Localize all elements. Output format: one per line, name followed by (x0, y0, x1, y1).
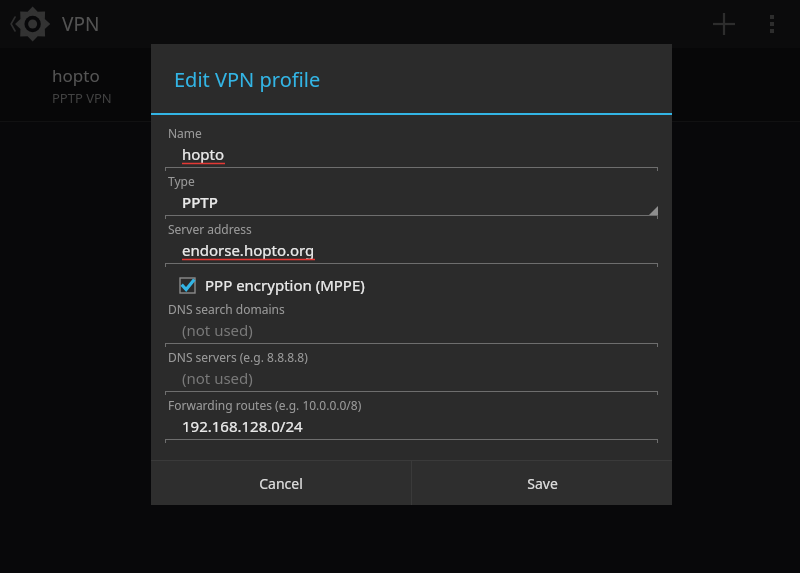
staticText: VPN (62, 11, 100, 37)
button[interactable]: Cancel (151, 461, 411, 505)
staticText: Forwarding routes (e.g. 10.0.0.0/8) (168, 397, 362, 413)
staticText: Cancel (259, 474, 303, 493)
staticText: 192.168.128.0/24 (182, 416, 303, 436)
button[interactable]: More options (748, 0, 796, 48)
button[interactable]: Back (8, 2, 52, 46)
button[interactable]: endorse.hopto.org (165, 238, 658, 269)
staticText: endorse.hopto.org (182, 240, 315, 260)
staticText: Name (168, 125, 202, 141)
button[interactable]: PPP encryption (MPPE) (179, 275, 658, 295)
button[interactable]: hopto (165, 142, 658, 173)
button[interactable]: Save (412, 461, 672, 505)
staticText: PPTP (182, 192, 218, 212)
button[interactable]: hopto (0, 48, 800, 121)
staticText: PPTP VPN (52, 89, 112, 107)
staticText: Save (527, 474, 558, 493)
staticText: Server address (168, 221, 252, 237)
button[interactable]: (not used) (165, 318, 658, 349)
staticText: Edit VPN profile (174, 66, 321, 93)
staticText: PPP encryption (MPPE) (205, 275, 365, 295)
button[interactable]: (not used) (165, 366, 658, 397)
staticText: Type (168, 173, 195, 189)
staticText: hopto (52, 64, 100, 87)
staticText: DNS servers (e.g. 8.8.8.8) (168, 349, 308, 365)
button[interactable]: Add VPN profile (700, 0, 748, 48)
staticText: (not used) (182, 368, 253, 388)
button[interactable]: 192.168.128.0/24 (165, 414, 658, 445)
staticText: DNS search domains (168, 301, 285, 317)
staticText: hopto (182, 144, 225, 164)
staticText: (not used) (182, 320, 253, 340)
button[interactable]: PPTP (165, 190, 658, 221)
